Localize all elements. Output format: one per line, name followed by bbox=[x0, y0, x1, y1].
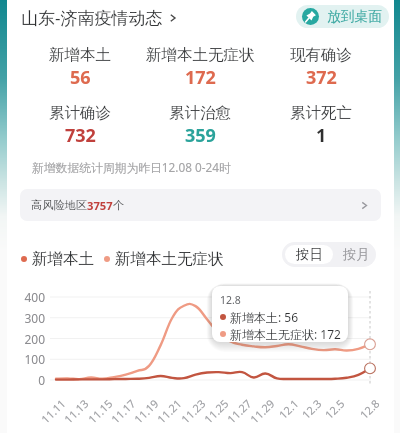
button[interactable]: 按月 bbox=[336, 242, 376, 267]
staticText: 0 bbox=[10, 372, 45, 388]
staticText: 按月 bbox=[343, 246, 370, 263]
staticText: 个 bbox=[113, 198, 125, 212]
staticText: 300 bbox=[10, 310, 45, 326]
staticText: 现有确诊 bbox=[290, 45, 352, 65]
staticText: 11.23 bbox=[175, 396, 208, 429]
staticText: 新增本土无症状: 172 bbox=[230, 326, 341, 342]
button[interactable]: 高风险地区 bbox=[20, 189, 381, 221]
staticText: 累计治愈 bbox=[169, 103, 231, 123]
staticText: 新增本土: 56 bbox=[230, 309, 299, 325]
staticText: 11.29 bbox=[244, 396, 277, 429]
staticText: 11.25 bbox=[198, 396, 231, 429]
staticText: 11.13 bbox=[58, 396, 91, 429]
staticText: 1 bbox=[316, 123, 327, 148]
staticText: 新增本土无症状 bbox=[146, 45, 255, 65]
staticText: 100 bbox=[10, 351, 45, 367]
button[interactable]: 按日 bbox=[285, 245, 333, 264]
staticText: 200 bbox=[10, 331, 45, 347]
staticText: 11.11 bbox=[35, 396, 68, 429]
staticText: 12.5 bbox=[314, 396, 347, 429]
staticText: 11.19 bbox=[128, 396, 161, 429]
staticText: 新增本土 bbox=[49, 45, 111, 65]
staticText: 新增本土无症状 bbox=[115, 249, 224, 269]
staticText: 359 bbox=[185, 123, 216, 148]
staticText: 12.1 bbox=[268, 396, 301, 429]
button[interactable]: 山东-济南疫情动态 bbox=[21, 6, 178, 29]
staticText: 放到桌面 bbox=[327, 8, 383, 25]
staticText: 11.21 bbox=[151, 396, 184, 429]
staticText: 400 bbox=[10, 289, 45, 305]
staticText: 11.27 bbox=[221, 396, 254, 429]
staticText: 372 bbox=[306, 65, 337, 90]
staticText: 12.3 bbox=[291, 396, 324, 429]
staticText: 高风险地区 bbox=[31, 198, 87, 212]
staticText: 11.15 bbox=[82, 396, 115, 429]
other: Add to home screen bbox=[302, 8, 319, 25]
staticText: 12.8 bbox=[349, 396, 382, 429]
staticText: 新增数据统计周期为昨日12.08 0-24时 bbox=[32, 159, 231, 175]
button[interactable]: Add to home screen bbox=[296, 5, 389, 28]
staticText: 新增本土 bbox=[32, 249, 94, 269]
staticText: 12.8 bbox=[220, 293, 241, 307]
staticText: 累计确诊 bbox=[49, 103, 111, 123]
staticText: 3757 bbox=[87, 198, 113, 213]
staticText: 累计死亡 bbox=[290, 103, 352, 123]
staticText: 732 bbox=[65, 123, 96, 148]
staticText: 11.17 bbox=[105, 396, 138, 429]
staticText: 山东-济南疫情动态 bbox=[21, 6, 163, 29]
staticText: 按日 bbox=[296, 246, 323, 263]
staticText: 56 bbox=[70, 65, 91, 90]
staticText: 172 bbox=[185, 65, 216, 90]
